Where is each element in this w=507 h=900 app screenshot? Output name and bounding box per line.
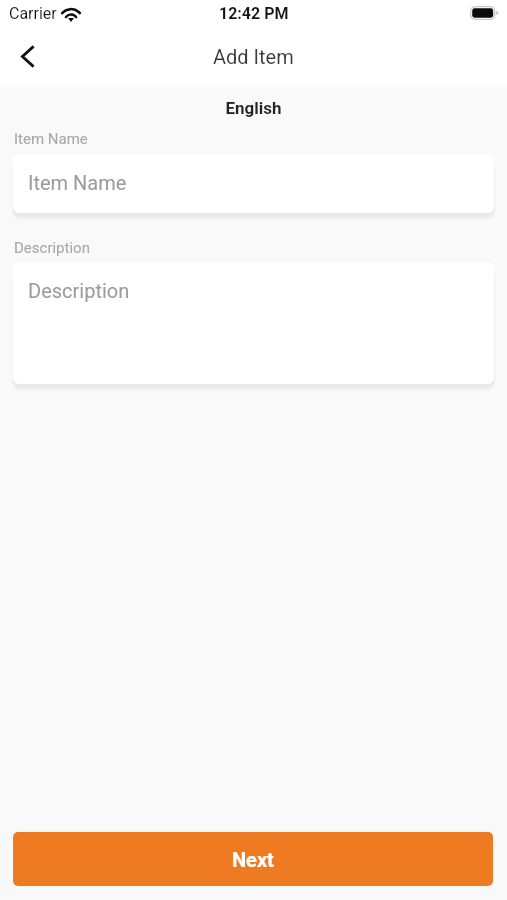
staticText: Next (232, 848, 274, 871)
button[interactable]: Next (13, 832, 493, 886)
staticText: Description (28, 279, 130, 302)
staticText: English (0, 98, 507, 118)
staticText: Item Name (28, 171, 127, 194)
staticText: Item Name (14, 130, 88, 148)
staticText: Description (14, 239, 90, 257)
staticText: 12:42 PM (219, 4, 289, 23)
button[interactable]: Description (13, 262, 494, 384)
button[interactable]: Item Name (13, 154, 494, 213)
button[interactable]: Back (4, 30, 52, 82)
staticText: Add Item (213, 45, 294, 68)
staticText: Carrier (9, 4, 57, 23)
